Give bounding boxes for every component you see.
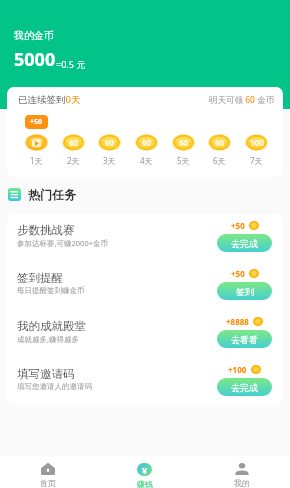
staticText: 去完成	[231, 238, 258, 249]
staticText: 4天	[140, 155, 153, 166]
staticText: 赚钱	[137, 479, 153, 488]
staticText: ¥	[142, 464, 148, 476]
button[interactable]: 60	[62, 134, 85, 151]
button[interactable]: 去看看	[217, 330, 272, 348]
staticText: +100	[228, 364, 247, 375]
staticText: 步数挑战赛	[17, 223, 75, 237]
other: Profile	[235, 463, 249, 475]
button[interactable]: 去完成	[217, 378, 272, 396]
button[interactable]: 填写邀请码	[7, 358, 283, 405]
staticText: 60	[179, 137, 189, 148]
button[interactable]: 60	[208, 134, 231, 151]
other: Earn	[137, 463, 152, 476]
staticText: 我的金币	[14, 29, 54, 42]
staticText: 7天	[250, 155, 263, 166]
staticText: 签到提醒	[17, 271, 63, 285]
button[interactable]: Earn	[96, 456, 193, 488]
staticText: 60	[142, 137, 152, 148]
staticText: 参加达标赛,可赚2000+金币	[17, 238, 108, 248]
staticText: 填写邀请码	[17, 367, 75, 381]
staticText: 签到	[236, 286, 254, 297]
staticText: 热门任务	[28, 187, 76, 202]
button[interactable]: Home	[0, 456, 96, 488]
staticText: =0.5 元	[56, 58, 86, 70]
staticText: 100	[250, 137, 264, 148]
button[interactable]: 60	[135, 134, 158, 151]
staticText: 60	[105, 137, 115, 148]
button[interactable]: 签到提醒	[7, 262, 283, 310]
staticText: 去完成	[231, 382, 258, 393]
staticText: 明天可领 60 金币	[209, 94, 275, 106]
staticText: 3天	[103, 155, 116, 166]
staticText: 我的	[234, 478, 250, 488]
staticText: 6天	[213, 155, 226, 166]
button[interactable]: 60	[98, 134, 121, 151]
button[interactable]: 100	[245, 134, 268, 151]
staticText: 2天	[67, 155, 80, 166]
button[interactable]	[25, 134, 48, 151]
button[interactable]: 我的成就殿堂	[7, 310, 283, 358]
staticText: +50	[30, 117, 43, 127]
button[interactable]: 60	[172, 134, 195, 151]
staticText: 每日提醒签到赚金币	[17, 286, 85, 295]
staticText: 填写您邀请人的邀请码	[17, 382, 92, 391]
staticText: +50	[231, 220, 245, 231]
staticText: 成就越多,赚得越多	[17, 334, 80, 344]
staticText: 已连续签到0天	[18, 93, 81, 106]
staticText: 首页	[40, 478, 56, 488]
other: Home	[41, 463, 55, 475]
button[interactable]: 去完成	[217, 234, 272, 252]
staticText: +50	[231, 268, 245, 279]
staticText: 1天	[30, 155, 43, 166]
staticText: 去看看	[231, 334, 258, 345]
staticText: +8888	[226, 316, 249, 327]
button[interactable]: 步数挑战赛	[7, 214, 283, 262]
button[interactable]: Profile	[193, 456, 290, 488]
staticText: 5000	[14, 47, 56, 72]
staticText: 5天	[177, 155, 190, 166]
staticText: 我的成就殿堂	[17, 319, 86, 333]
staticText: 60	[215, 137, 225, 148]
button[interactable]: 签到	[217, 282, 272, 300]
staticText: 60	[69, 137, 79, 148]
